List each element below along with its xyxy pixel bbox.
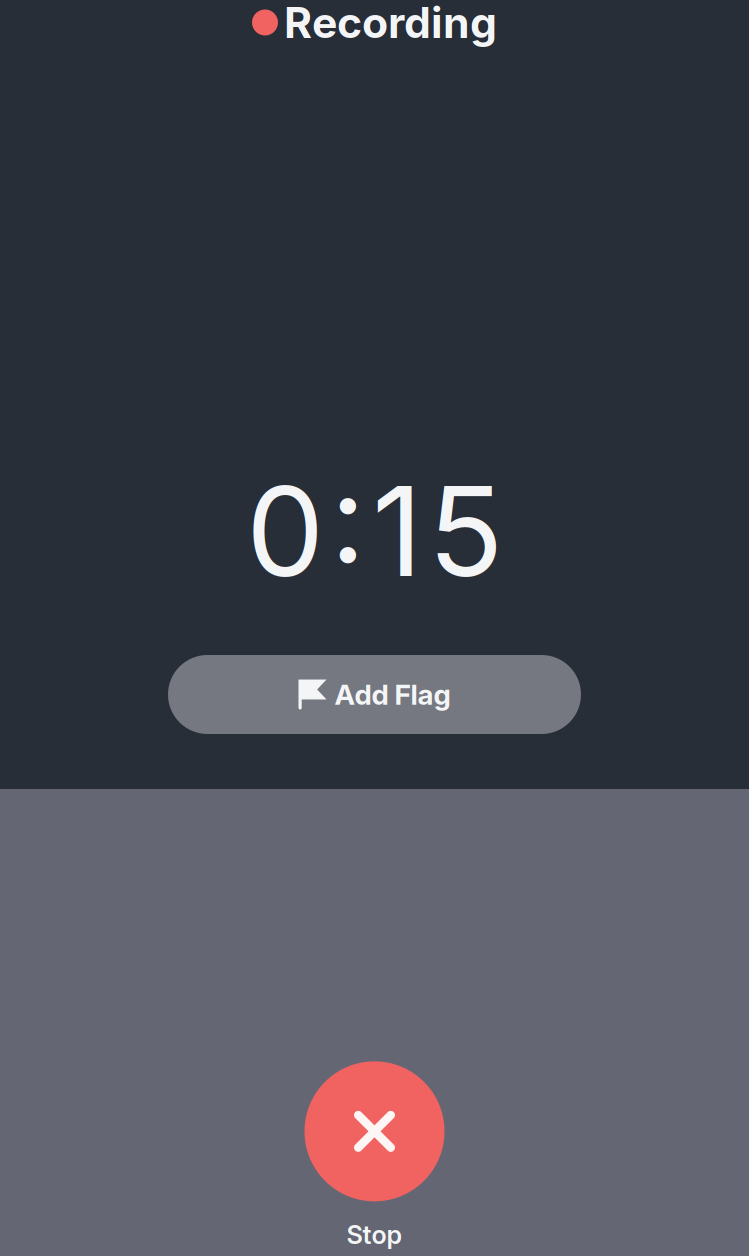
staticText: 0:15 <box>246 456 503 606</box>
button[interactable]: Stop recording <box>304 1061 444 1250</box>
staticText: Recording <box>284 0 497 48</box>
staticText: Stop <box>346 1219 402 1250</box>
button[interactable]: Add Flag <box>168 655 581 734</box>
staticText: Add Flag <box>334 678 450 711</box>
